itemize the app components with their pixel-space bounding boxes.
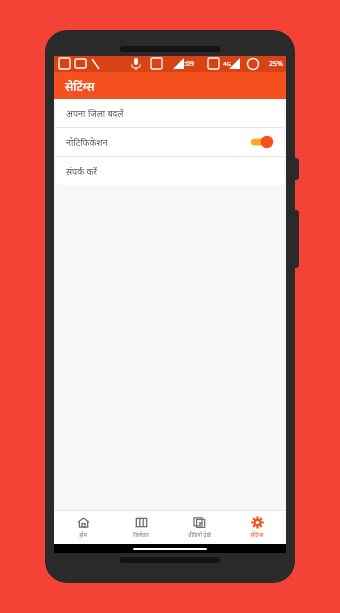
staticText: अपना जिला बदलें bbox=[66, 107, 124, 119]
button[interactable]: नोटिफिकेशन bbox=[56, 128, 284, 156]
button[interactable]: वीडियो देखें bbox=[170, 510, 228, 544]
staticText: जिलेवार bbox=[133, 531, 149, 538]
button[interactable]: होम bbox=[54, 510, 112, 544]
staticText: संपर्क करें bbox=[66, 165, 98, 177]
button[interactable]: संपर्क करें bbox=[56, 157, 284, 185]
staticText: नोटिफिकेशन bbox=[66, 136, 108, 148]
staticText: होम bbox=[79, 531, 87, 538]
staticText: 7:09 bbox=[180, 59, 194, 69]
staticText: 25% bbox=[269, 59, 283, 69]
button[interactable]: अपना जिला बदलें bbox=[56, 99, 284, 127]
button[interactable]: जिलेवार bbox=[112, 510, 170, 544]
staticText: 4G bbox=[223, 60, 231, 68]
staticText: वीडियो देखें bbox=[188, 531, 211, 538]
staticText: सेटिंग्स bbox=[65, 78, 95, 94]
staticText: सेटिंग्स bbox=[250, 531, 264, 538]
button[interactable]: Notifications toggle bbox=[250, 135, 274, 149]
button[interactable]: सेटिंग्स bbox=[228, 510, 286, 544]
